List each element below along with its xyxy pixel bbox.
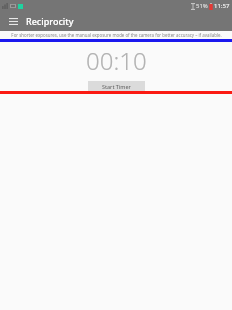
button[interactable]: Start Timer xyxy=(88,81,145,91)
button[interactable]: Open navigation drawer xyxy=(5,13,21,29)
staticText: For shorter exposures, use the manual ex… xyxy=(11,32,222,38)
staticText: 00:10 xyxy=(86,44,147,77)
staticText: Reciprocity xyxy=(26,15,74,27)
staticText: Start Timer xyxy=(102,83,131,90)
staticText: 51% xyxy=(196,2,208,10)
staticText: 11:57 xyxy=(214,2,230,10)
